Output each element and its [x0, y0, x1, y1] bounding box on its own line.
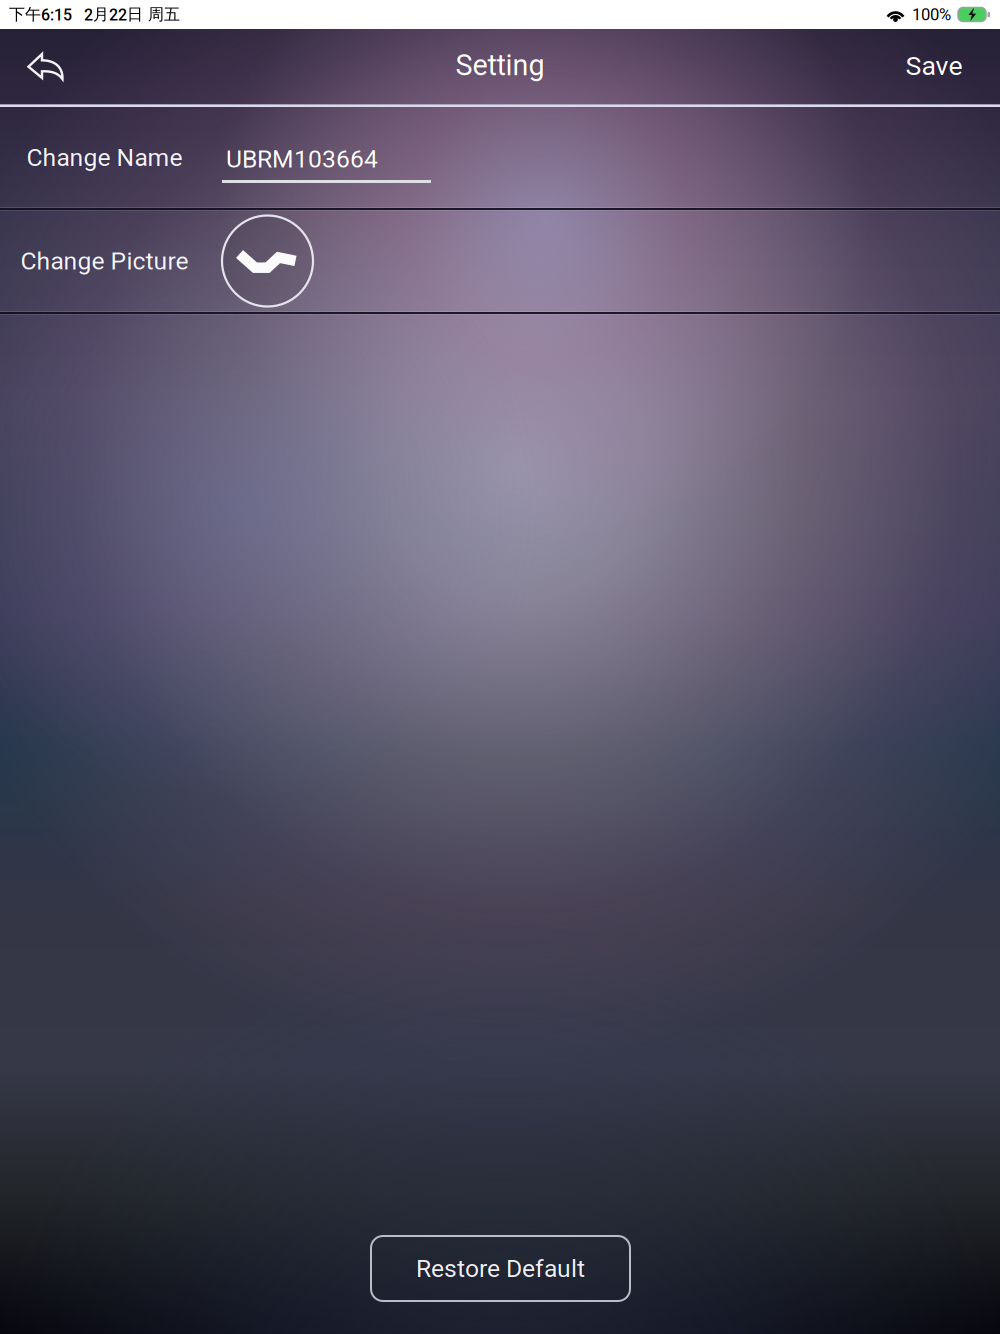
staticText: UBRM103664: [226, 144, 378, 173]
staticText: Save: [905, 50, 962, 82]
button[interactable]: Device name: [222, 138, 431, 183]
staticText: Change Picture: [20, 246, 188, 275]
staticText: Change Name: [26, 143, 182, 172]
staticText: Restore Default: [416, 1254, 585, 1283]
staticText: 100%: [912, 5, 951, 24]
button[interactable]: Save: [875, 29, 992, 103]
staticText: 下午6:15 2月22日 周五: [9, 4, 180, 25]
button[interactable]: Restore Default: [371, 1236, 630, 1301]
staticText: Setting: [455, 49, 544, 82]
button[interactable]: Back: [0, 30, 92, 104]
button[interactable]: Change picture: [217, 210, 318, 311]
